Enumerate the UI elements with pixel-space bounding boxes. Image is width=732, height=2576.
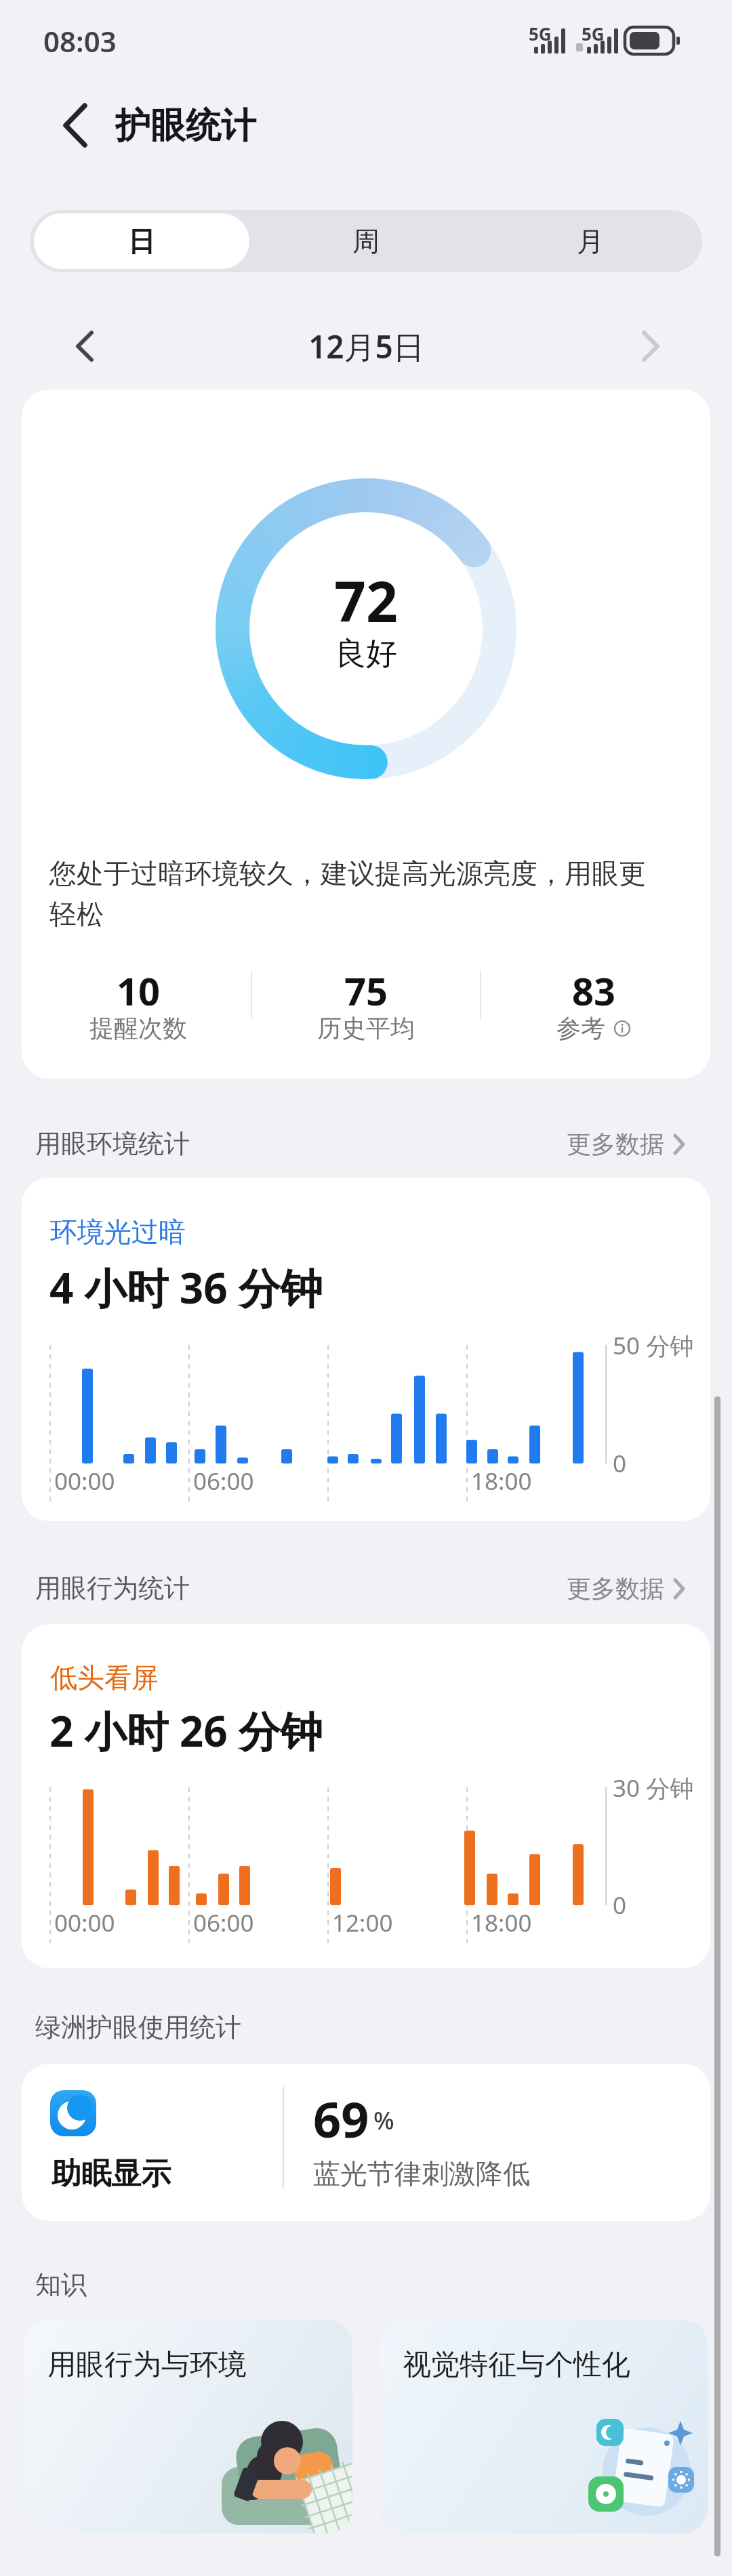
staticText: 用眼行为与环境	[47, 2347, 247, 2383]
button[interactable]	[22, 2064, 710, 2221]
staticText: %	[373, 2104, 394, 2137]
staticText: 月	[577, 224, 604, 258]
staticText: 06:00	[193, 1907, 254, 1939]
staticText: 用眼环境统计	[35, 1127, 190, 1160]
button[interactable]	[24, 2320, 352, 2533]
staticText: 06:00	[193, 1465, 254, 1497]
staticText: 周	[352, 224, 380, 258]
staticText: 更多数据	[567, 1573, 664, 1604]
staticText: 参考	[556, 1013, 605, 1043]
staticText: 良好	[335, 634, 397, 673]
button[interactable]: 日	[30, 210, 253, 272]
staticText: 0	[613, 1447, 627, 1480]
button[interactable]: 月	[479, 210, 702, 272]
staticText: 75	[344, 965, 388, 1011]
staticText: 4 小时 36 分钟	[49, 1259, 323, 1313]
staticText: 视觉特征与个性化	[403, 2347, 630, 2383]
staticText: 提醒次数	[89, 1013, 187, 1043]
staticText: 历史平均	[317, 1013, 415, 1043]
button[interactable]: 更多数据	[515, 1569, 691, 1607]
staticText: 5G	[582, 22, 605, 43]
button[interactable]	[47, 102, 95, 149]
staticText: 用眼行为统计	[35, 1572, 190, 1604]
staticText: 知识	[35, 2268, 87, 2301]
staticText: 72	[334, 562, 398, 637]
staticText: 18:00	[471, 1465, 532, 1497]
button[interactable]	[627, 325, 674, 367]
staticText: 您处于过暗环境较久，建议提高光源亮度，用眼更	[49, 856, 646, 890]
staticText: 环境光过暗	[50, 1215, 186, 1249]
staticText: 50 分钟	[613, 1329, 694, 1362]
button[interactable]	[380, 2320, 708, 2533]
staticText: 低头看屏	[50, 1661, 159, 1695]
staticText: 绿洲护眼使用统计	[35, 2011, 241, 2043]
staticText: 30 分钟	[613, 1772, 694, 1804]
button[interactable]: 周	[254, 210, 478, 272]
staticText: 83	[572, 965, 616, 1011]
button[interactable]	[61, 325, 108, 367]
staticText: 助眠显示	[52, 2155, 171, 2193]
staticText: 蓝光节律刺激降低	[313, 2157, 530, 2190]
button[interactable]: 更多数据	[515, 1125, 691, 1163]
staticText: 10	[117, 965, 161, 1011]
button[interactable]: 参考	[492, 1011, 695, 1045]
staticText: 2 小时 26 分钟	[49, 1702, 323, 1756]
staticText: 00:00	[54, 1465, 115, 1497]
staticText: 18:00	[471, 1907, 532, 1939]
staticText: 轻松	[49, 897, 104, 931]
staticText: 12月5日	[308, 325, 424, 367]
staticText: 5G	[529, 22, 552, 43]
staticText: 00:00	[54, 1907, 115, 1939]
staticText: 69	[313, 2085, 369, 2140]
staticText: 0	[613, 1889, 627, 1921]
staticText: 12:00	[332, 1907, 393, 1939]
staticText: 护眼统计	[115, 104, 256, 148]
staticText: 更多数据	[567, 1129, 664, 1159]
staticText: 08:03	[43, 22, 117, 60]
staticText: 日	[128, 224, 155, 258]
